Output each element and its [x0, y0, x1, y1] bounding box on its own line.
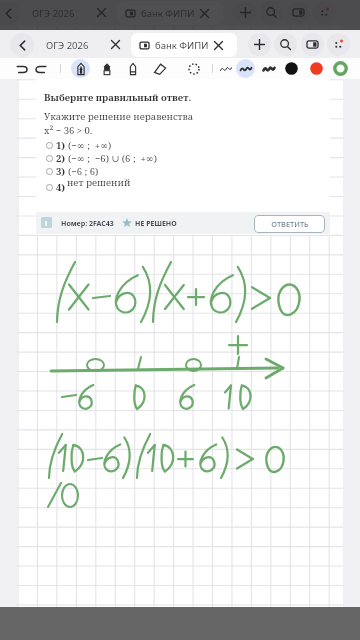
staticText: 3) [56, 165, 66, 178]
button[interactable]: Pen [71, 59, 90, 78]
button[interactable]: банк ФИПИ [131, 33, 237, 57]
button[interactable]: Back [10, 33, 34, 57]
button[interactable]: ОГЭ 2026 [26, 0, 116, 26]
button[interactable]: 1) [46, 139, 296, 152]
staticText: Выберите правильный ответ. [44, 91, 192, 104]
staticText: 2) [56, 152, 66, 165]
button[interactable]: 4) [46, 181, 296, 194]
button[interactable]: Tabs [301, 33, 324, 56]
button[interactable]: Search [274, 33, 297, 56]
button[interactable]: Green [331, 59, 350, 78]
staticText: (−6 ; 6) [68, 165, 99, 178]
button[interactable]: Medium stroke [236, 59, 255, 78]
button[interactable]: Thick stroke [259, 59, 278, 78]
button[interactable]: Search [260, 1, 283, 24]
button[interactable]: New tab [234, 1, 257, 24]
button[interactable]: 3) [46, 165, 296, 178]
button[interactable]: ОТВЕТИТЬ [254, 215, 325, 233]
button[interactable]: Pencil [123, 59, 142, 78]
staticText: i [45, 218, 48, 228]
button[interactable]: Red [307, 59, 326, 78]
button[interactable]: Tabs [287, 1, 310, 24]
button[interactable]: More options [313, 1, 336, 24]
staticText: 1) [56, 139, 66, 152]
staticText: x² − 36 > 0. [44, 124, 93, 137]
button[interactable]: Black [282, 59, 301, 78]
button[interactable]: Back [0, 1, 20, 25]
button[interactable]: Thin stroke [216, 59, 235, 78]
staticText: (−∞ ; −6) ∪ (6 ; +∞) [68, 152, 158, 165]
button[interactable]: ОГЭ 2026 [40, 30, 130, 58]
staticText: банк ФИПИ [141, 7, 195, 20]
button[interactable]: 2) [46, 152, 296, 165]
button[interactable]: Marker [97, 59, 116, 78]
staticText: ОГЭ 2026 [32, 7, 75, 20]
button[interactable]: New tab [248, 33, 271, 56]
staticText: банк ФИПИ [155, 39, 209, 52]
staticText: 4) [56, 181, 66, 194]
staticText: Укажите решение неравенства [44, 110, 194, 123]
button[interactable]: More options [327, 33, 350, 56]
staticText: Номер: 2FAC43 [61, 219, 114, 229]
button[interactable]: Select [184, 59, 203, 78]
button[interactable]: Undo [12, 59, 31, 78]
staticText: ОГЭ 2026 [46, 39, 89, 52]
staticText: ОТВЕТИТЬ [271, 219, 309, 229]
staticText: (−∞ ; +∞) [68, 139, 112, 152]
button[interactable]: Eraser [150, 59, 169, 78]
button[interactable]: банк ФИПИ [117, 1, 223, 25]
staticText: нет решений [67, 176, 131, 189]
button[interactable]: Redo [31, 59, 50, 78]
staticText: НЕ РЕШЕНО [135, 219, 177, 229]
